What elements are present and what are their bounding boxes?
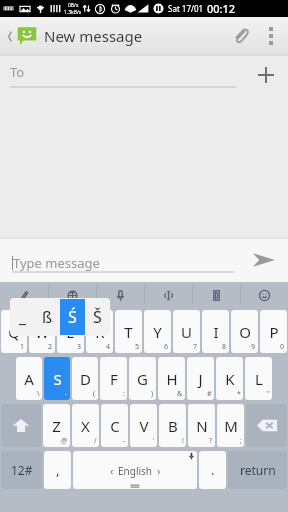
button[interactable]: L — [245, 357, 272, 400]
staticText: R — [95, 322, 105, 342]
staticText: 2 — [48, 342, 53, 352]
button[interactable]: T — [115, 310, 142, 353]
button[interactable]: S — [44, 357, 70, 400]
staticText: / — [94, 436, 97, 446]
button[interactable]: Z — [43, 404, 70, 447]
staticText: W — [35, 322, 49, 342]
button[interactable]: Handwriting — [0, 282, 48, 308]
button[interactable]: H — [158, 357, 185, 400]
staticText: M — [224, 416, 238, 436]
button[interactable]: W — [29, 310, 55, 353]
staticText: * — [237, 389, 241, 399]
staticText: : — [123, 389, 125, 399]
button[interactable]: Backspace — [246, 404, 287, 447]
button[interactable]: Cursor control — [145, 282, 192, 308]
button[interactable]: Attach — [224, 17, 258, 55]
button[interactable]: , — [44, 451, 71, 489]
button[interactable]: V — [130, 404, 157, 447]
staticText: 1.3kB/s — [64, 9, 82, 16]
staticText: ! — [182, 436, 184, 446]
staticText: To — [10, 63, 25, 81]
staticText: N — [196, 416, 208, 436]
button[interactable]: Voice input — [97, 282, 144, 308]
staticText: Z — [52, 416, 61, 436]
staticText: V — [139, 416, 149, 436]
staticText: I — [213, 322, 219, 342]
staticText: A — [24, 369, 34, 389]
button[interactable]: F — [100, 357, 127, 400]
staticText: " — [267, 389, 270, 399]
button[interactable]: D — [72, 357, 98, 400]
staticText: . — [211, 461, 215, 479]
staticText: ( — [93, 389, 96, 399]
staticText: ' — [153, 436, 155, 446]
button[interactable]: X — [72, 404, 99, 447]
staticText: 0 — [280, 342, 285, 352]
button[interactable]: Add recipient — [244, 55, 288, 95]
staticText: ß — [42, 306, 53, 328]
button[interactable]: Language — [49, 282, 96, 308]
button[interactable]: A — [16, 357, 42, 400]
button[interactable]: P — [260, 310, 287, 353]
button[interactable]: New message — [4, 25, 146, 47]
staticText: Ś — [68, 306, 77, 328]
staticText: S — [53, 369, 62, 389]
staticText: E — [66, 322, 75, 342]
staticText: English — [118, 464, 153, 478]
button[interactable]: Send — [240, 238, 288, 282]
button[interactable]: Y — [144, 310, 171, 353]
button[interactable]: 12# — [1, 451, 42, 489]
staticText: _ — [19, 306, 27, 328]
button[interactable]: O — [231, 310, 258, 353]
staticText: & — [177, 389, 183, 399]
button[interactable]: M — [217, 404, 244, 447]
button[interactable]: N — [188, 404, 215, 447]
button[interactable]: I — [202, 310, 229, 353]
staticText: Q — [8, 322, 20, 342]
button[interactable]: Š — [85, 299, 110, 335]
button[interactable]: B — [159, 404, 186, 447]
button[interactable]: E — [57, 310, 84, 353]
button[interactable]: K — [216, 357, 243, 400]
button[interactable]: return — [228, 451, 287, 489]
button[interactable]: R — [86, 310, 113, 353]
staticText: @ — [61, 436, 68, 446]
staticText: K — [225, 369, 235, 389]
staticText: 6 — [164, 342, 169, 352]
staticText: G — [137, 369, 148, 389]
staticText: X — [81, 416, 90, 436]
button[interactable]: Q — [1, 310, 27, 353]
staticText: - — [65, 389, 68, 399]
button[interactable]: More options — [258, 17, 284, 55]
staticText: Type message — [13, 254, 100, 272]
staticText: › — [157, 463, 161, 478]
button[interactable]: Clipboard — [193, 282, 240, 308]
staticText: 0B/s — [68, 2, 79, 9]
button[interactable]: Emoji — [241, 282, 288, 308]
button[interactable]: Shift — [1, 404, 41, 447]
staticText: F — [110, 369, 118, 389]
staticText: ; — [240, 436, 242, 446]
staticText: Y — [153, 322, 162, 342]
button[interactable]: U — [173, 310, 200, 353]
button[interactable]: C — [101, 404, 128, 447]
staticText: 8 — [222, 342, 227, 352]
button[interactable]: Space, English — [73, 451, 197, 489]
button[interactable]: . — [199, 451, 226, 489]
button[interactable]: ß — [35, 299, 60, 335]
staticText: T — [124, 322, 133, 342]
staticText: H — [166, 369, 178, 389]
staticText: \ — [37, 389, 40, 399]
button[interactable]: Ś — [60, 299, 85, 335]
staticText: 00:12 — [207, 1, 236, 16]
staticText: New message — [44, 26, 143, 46]
staticText: D — [80, 369, 91, 389]
staticText: return — [240, 462, 276, 478]
button[interactable]: J — [187, 357, 214, 400]
staticText: 12# — [11, 462, 33, 478]
staticText: Sat 17/01 — [168, 3, 204, 14]
button[interactable]: G — [129, 357, 156, 400]
button[interactable]: _ — [10, 299, 35, 335]
staticText: P — [269, 322, 279, 342]
staticText: 4 — [106, 342, 111, 352]
